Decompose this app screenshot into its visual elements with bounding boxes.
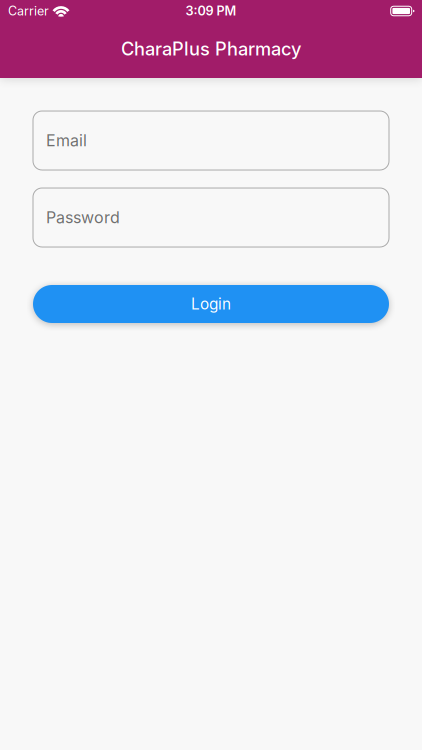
staticText: CharaPlus Pharmacy bbox=[121, 38, 301, 60]
staticText: Password bbox=[46, 208, 120, 227]
staticText: Login bbox=[191, 295, 231, 313]
staticText: Carrier bbox=[8, 3, 49, 19]
staticText: 3:09 PM bbox=[185, 3, 236, 19]
button[interactable]: Login bbox=[33, 285, 389, 323]
staticText: Email bbox=[46, 131, 87, 150]
